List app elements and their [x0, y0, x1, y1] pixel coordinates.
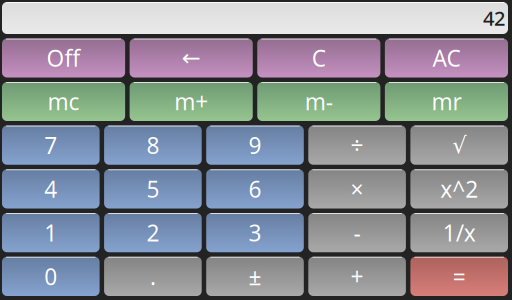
staticText: 9: [248, 130, 261, 160]
staticText: 3: [248, 218, 261, 248]
button[interactable]: AC: [385, 38, 508, 77]
button[interactable]: 8: [104, 125, 202, 165]
button[interactable]: m-: [257, 82, 380, 121]
staticText: 4: [44, 174, 57, 204]
staticText: mc: [48, 86, 80, 116]
staticText: +: [351, 261, 364, 291]
button[interactable]: √: [410, 125, 508, 165]
button[interactable]: 6: [206, 169, 304, 208]
staticText: 7: [44, 130, 57, 160]
staticText: x^2: [440, 174, 478, 204]
button[interactable]: 1: [2, 213, 100, 252]
staticText: 1: [44, 218, 57, 248]
button[interactable]: x^2: [410, 169, 508, 208]
staticText: 2: [146, 218, 159, 248]
button[interactable]: ±: [206, 257, 304, 296]
button[interactable]: ←: [130, 38, 253, 77]
button[interactable]: 0: [2, 257, 100, 296]
button[interactable]: m+: [130, 82, 253, 121]
button[interactable]: 7: [2, 125, 100, 165]
staticText: =: [453, 261, 466, 291]
button[interactable]: +: [308, 257, 406, 296]
button[interactable]: 5: [104, 169, 202, 208]
button[interactable]: Off: [2, 38, 125, 77]
staticText: -: [354, 218, 361, 248]
button[interactable]: 9: [206, 125, 304, 165]
button[interactable]: ×: [308, 169, 406, 208]
button[interactable]: 2: [104, 213, 202, 252]
staticText: .: [150, 261, 156, 291]
button[interactable]: -: [308, 213, 406, 252]
staticText: 6: [248, 174, 261, 204]
button[interactable]: C: [257, 38, 380, 77]
staticText: ±: [248, 261, 261, 291]
button[interactable]: .: [104, 257, 202, 296]
staticText: ×: [351, 174, 364, 204]
staticText: 8: [146, 130, 159, 160]
button[interactable]: 3: [206, 213, 304, 252]
staticText: 42: [483, 5, 505, 31]
staticText: 5: [146, 174, 159, 204]
staticText: ÷: [351, 130, 364, 160]
staticText: mr: [431, 86, 461, 116]
button[interactable]: 1/x: [410, 213, 508, 252]
staticText: m+: [174, 86, 208, 116]
staticText: 0: [44, 261, 57, 291]
staticText: ←: [182, 45, 201, 71]
staticText: √: [452, 132, 466, 158]
staticText: AC: [432, 43, 460, 73]
button[interactable]: 4: [2, 169, 100, 208]
button[interactable]: mr: [385, 82, 508, 121]
button[interactable]: mc: [2, 82, 125, 121]
button[interactable]: =: [410, 257, 508, 296]
staticText: C: [312, 43, 326, 73]
staticText: 1/x: [443, 218, 476, 248]
staticText: Off: [47, 43, 81, 73]
button[interactable]: ÷: [308, 125, 406, 165]
staticText: m-: [305, 86, 333, 116]
